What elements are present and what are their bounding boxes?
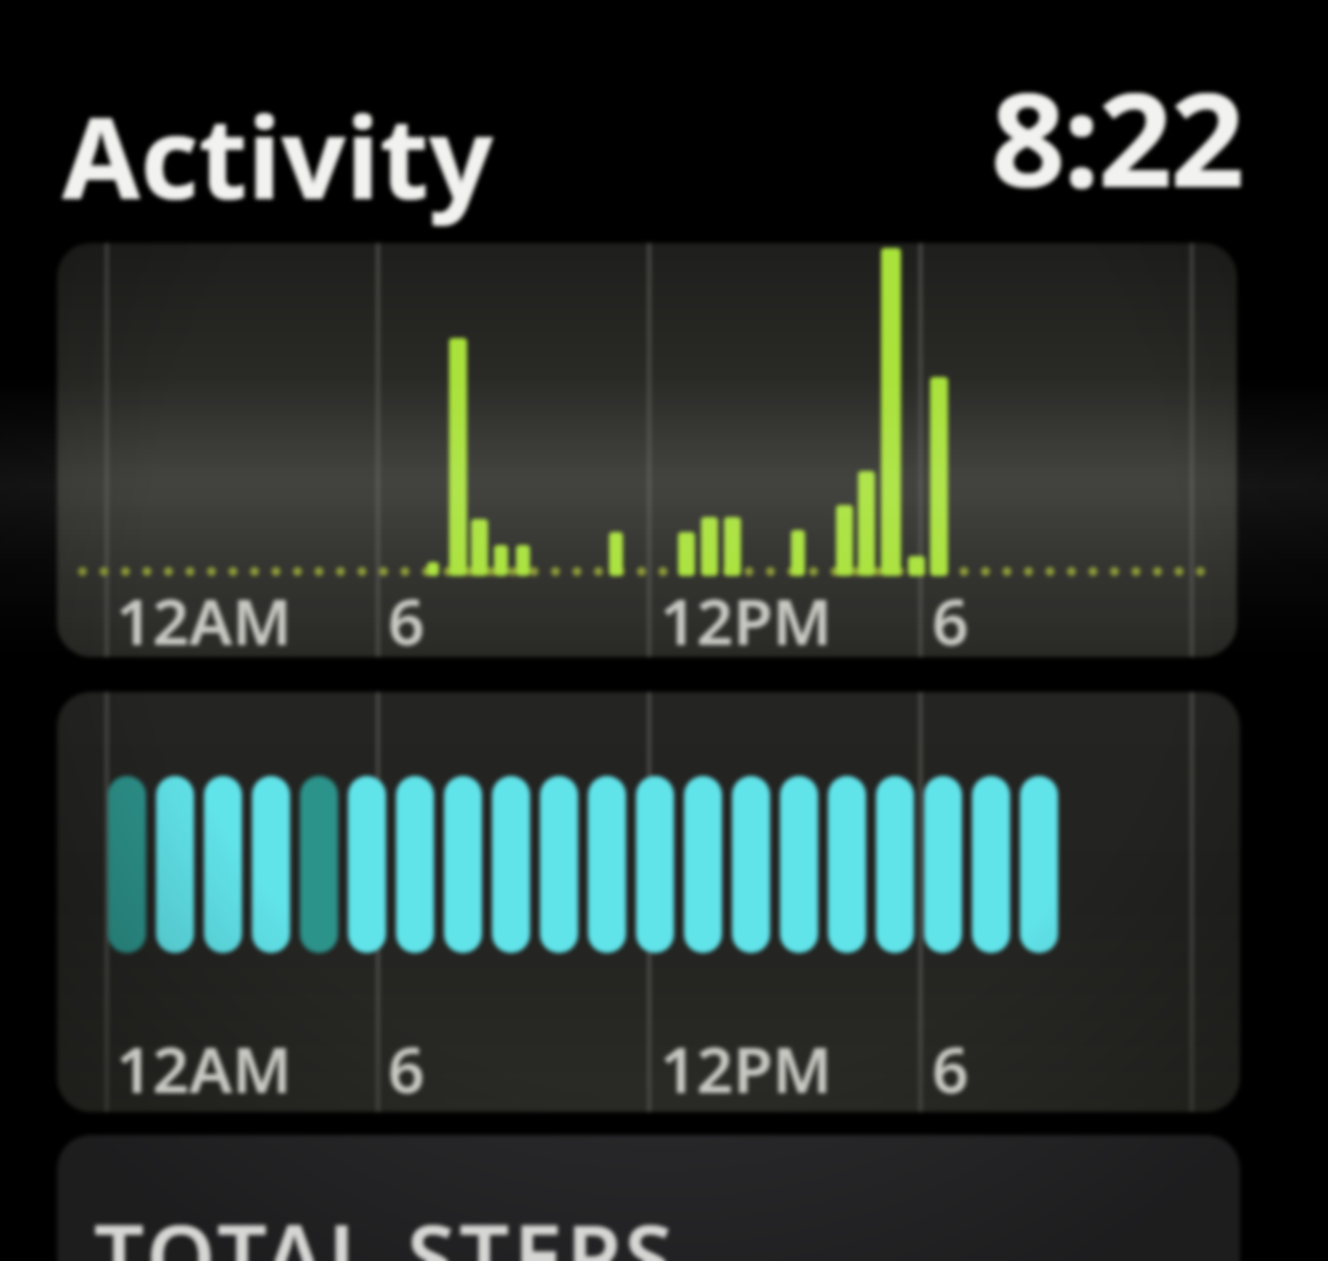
staticText: 12AM [116, 1025, 292, 1112]
button[interactable] [57, 692, 1240, 1112]
staticText: 12AM [116, 577, 292, 664]
staticText: 12PM [660, 1025, 833, 1112]
button[interactable] [57, 243, 1237, 657]
staticText: 6 [932, 577, 969, 664]
staticText: 12PM [660, 577, 833, 664]
staticText: Activity [62, 78, 494, 232]
staticText: 6 [388, 577, 425, 664]
staticText: TOTAL STEPS [94, 1195, 678, 1261]
staticText: 6 [932, 1025, 969, 1112]
staticText: 6 [388, 1025, 425, 1112]
button[interactable] [57, 1135, 1240, 1261]
staticText: 8:22 [991, 48, 1243, 225]
